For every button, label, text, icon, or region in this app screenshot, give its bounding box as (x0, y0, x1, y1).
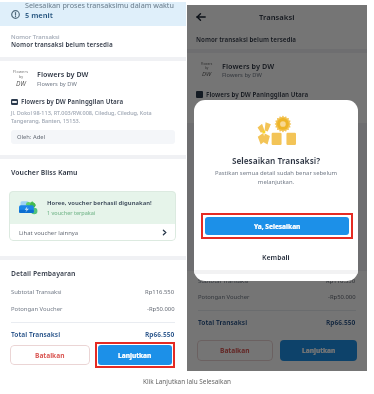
staticText: Flowers by DW (37, 80, 77, 88)
staticText: by (205, 66, 209, 70)
staticText: Lanjutkan (118, 351, 152, 360)
staticText: Batalkan (35, 351, 65, 360)
button[interactable]: Back (196, 12, 206, 22)
staticText: Oleh: Adel (17, 133, 45, 141)
staticText: Transaksi (259, 12, 295, 22)
staticText: Voucher Bliss Kamu (11, 168, 78, 177)
staticText: DW (202, 70, 212, 78)
staticText: Subtotal Transaksi (11, 288, 62, 296)
button[interactable]: Lanjutkan (98, 345, 172, 365)
staticText: -Rp50.000 (147, 305, 175, 313)
button[interactable]: Lanjutkan (280, 340, 357, 361)
staticText: Flowers by DW Paninggilan Utara (206, 90, 309, 98)
staticText: Potongan Voucher (11, 305, 63, 313)
button[interactable]: Lihat voucher lainnya (9, 224, 176, 241)
staticText: Flowers by DW Paninggilan Utara (21, 97, 124, 105)
staticText: Selesaikan Transaksi? (194, 155, 358, 166)
staticText: Nomor Transaksi (11, 32, 60, 40)
staticText: Rp116.550 (145, 288, 175, 296)
staticText: Ya, Selesaikan (254, 222, 301, 231)
staticText: Flowers by DW (37, 69, 89, 79)
button[interactable]: Ya, Selesaikan (205, 217, 349, 235)
staticText: 1 voucher terpakai (47, 209, 96, 216)
staticText: -Rp50.000 (328, 293, 356, 301)
staticText: Nomor transaksi belum tersedia (11, 40, 113, 49)
staticText: Kembali (262, 253, 290, 262)
staticText: DW (16, 79, 26, 88)
staticText: Subtotal Transaksi (198, 277, 249, 285)
button[interactable]: Batalkan (197, 340, 273, 361)
staticText: Flowers by DW (222, 61, 275, 71)
staticText: Total Transaksi (198, 318, 248, 327)
staticText: Detail Pembayaran (11, 269, 76, 278)
staticText: Jl. Dokol 98-113, RT.003/RW.008, Ciledug… (11, 109, 152, 125)
staticText: Horee, voucher berhasil digunakan! (47, 199, 152, 207)
staticText: Flowers (13, 69, 29, 74)
staticText: 5 menit (25, 10, 53, 20)
staticText: Potongan Voucher (198, 293, 250, 301)
staticText: by (19, 74, 23, 79)
button[interactable]: Kembali (202, 245, 350, 270)
staticText: Rp66.550 (145, 330, 175, 339)
staticText: Selesaikan proses transaksimu dalam wakt… (25, 0, 174, 10)
staticText: Rp66.550 (326, 318, 356, 327)
staticText: Batalkan (220, 346, 250, 355)
staticText: Rp116.550 (326, 277, 356, 285)
staticText: Total Transaksi (11, 330, 61, 339)
button[interactable]: Batalkan (10, 345, 90, 365)
staticText: Nomor transaksi belum tersedia (196, 35, 296, 43)
staticText: Klik Lanjutkan lalu Selesaikan (0, 377, 374, 386)
staticText: Lanjutkan (302, 346, 336, 355)
staticText: Lihat voucher lainnya (19, 229, 79, 237)
staticText: Flowers by DW (222, 71, 262, 79)
staticText: Pastikan semua detail sudah benar sebelu… (202, 169, 350, 186)
staticText: Flowers (201, 62, 213, 66)
